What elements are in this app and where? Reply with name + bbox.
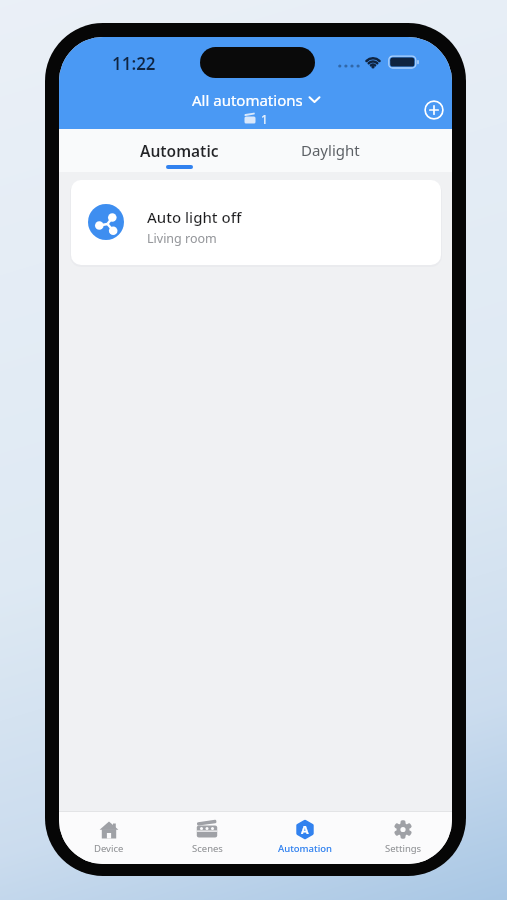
button[interactable]: A (256, 811, 354, 864)
staticText: 11:22 (112, 52, 156, 75)
staticText: Automation (278, 842, 333, 855)
staticText: A (301, 822, 309, 837)
button[interactable]: All automations (192, 90, 320, 110)
button[interactable]: Device (59, 811, 158, 864)
staticText: 1 (261, 111, 268, 127)
staticText: Automatic (140, 140, 219, 161)
button[interactable]: Daylight (270, 135, 390, 165)
button[interactable]: Automatic (119, 135, 239, 165)
button[interactable]: Settings (354, 811, 452, 864)
staticText: Living room (147, 230, 217, 247)
staticText: Daylight (301, 140, 360, 160)
staticText: All automations (192, 90, 303, 110)
staticText: Auto light off (147, 207, 242, 227)
staticText: Device (94, 842, 124, 855)
staticText: Settings (385, 842, 422, 855)
button[interactable]: Scenes (158, 811, 256, 864)
staticText: Scenes (192, 842, 223, 855)
button[interactable] (421, 97, 447, 123)
button[interactable]: Auto light off (71, 180, 441, 265)
